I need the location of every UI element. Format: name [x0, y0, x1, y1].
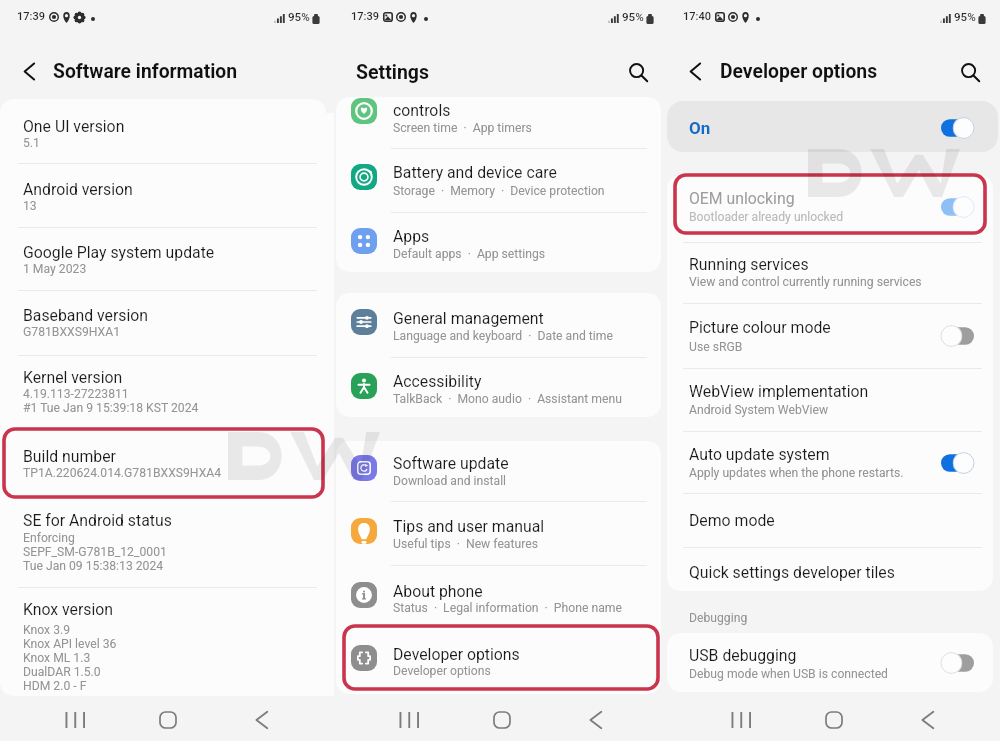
button[interactable]: Battery and device care [336, 148, 661, 212]
button[interactable]: WebView implementation [667, 368, 993, 431]
staticText: Knox ML 1.3 [23, 651, 91, 665]
staticText: Developer options [393, 645, 520, 664]
button[interactable]: Switch on [940, 195, 975, 219]
button[interactable]: Navigate up [13, 55, 45, 87]
staticText: View and control currently running servi… [689, 275, 922, 289]
button[interactable]: Switch on [940, 116, 975, 140]
staticText: General management [393, 309, 544, 328]
staticText: Quick settings developer tiles [689, 563, 895, 582]
staticText: Language and keyboard · Date and time [393, 329, 613, 343]
staticText: Android System WebView [689, 403, 829, 417]
button[interactable]: Accessibility [336, 357, 661, 417]
button[interactable]: Baseband version, G781BXXS9HXA1 [0, 290, 334, 355]
staticText: Enforcing [23, 531, 75, 545]
staticText: 4.19.113-27223811 [23, 387, 129, 401]
staticText: Debug mode when USB is connected [689, 667, 888, 681]
button[interactable]: Software update [336, 441, 661, 501]
button[interactable]: Google Play system update, 1 May 2023 [0, 227, 334, 290]
staticText: Auto update system [689, 445, 830, 464]
staticText: Developer options [720, 60, 878, 83]
staticText: TP1A.220624.014.G781BXXS9HXA4 [23, 466, 222, 480]
button[interactable]: Home [152, 704, 184, 736]
button[interactable]: About phone [336, 565, 661, 624]
staticText: Storage · Memory · Device protection [393, 184, 605, 198]
button[interactable]: Demo mode [667, 493, 993, 547]
staticText: controls [393, 101, 451, 120]
staticText: 13 [23, 199, 37, 213]
button[interactable]: Build number, TP1A.220624.014.G781BXXS9H… [0, 427, 334, 499]
staticText: Use sRGB [689, 340, 743, 354]
button[interactable]: Developer options [336, 624, 661, 694]
staticText: G781BXXS9HXA1 [23, 325, 121, 339]
staticText: Battery and device care [393, 163, 557, 182]
staticText: Software update [393, 454, 509, 473]
staticText: Knox 3.9 [23, 623, 71, 637]
button[interactable]: Recent apps [58, 704, 92, 736]
staticText: Screen time · App timers [393, 121, 532, 135]
button[interactable]: Android version, 13 [0, 163, 334, 227]
button[interactable]: Recent apps [724, 704, 758, 736]
button[interactable]: Back [580, 704, 612, 736]
staticText: TalkBack · Mono audio · Assistant menu [393, 392, 622, 406]
button[interactable]: Apps [336, 212, 661, 272]
staticText: Knox version [23, 600, 114, 619]
staticText: Status · Legal information · Phone name [393, 601, 622, 615]
button[interactable]: Digital wellbeing and parental controls [336, 97, 661, 148]
button[interactable]: Home [818, 704, 850, 736]
button[interactable]: Switch on [940, 451, 975, 475]
staticText: SE for Android status [23, 511, 172, 530]
button[interactable]: Quick settings developer tiles [667, 547, 993, 591]
staticText: Demo mode [689, 511, 775, 530]
staticText: 17:40 [683, 10, 711, 23]
staticText: #1 Tue Jan 9 15:39:18 KST 2024 [23, 401, 199, 415]
staticText: 1 May 2023 [23, 262, 87, 276]
button[interactable]: Home [486, 704, 518, 736]
staticText: 17:39 [351, 10, 379, 23]
staticText: One UI version [23, 117, 125, 136]
button[interactable]: Back [246, 704, 278, 736]
staticText: Apply updates when the phone restarts. [689, 466, 904, 480]
button[interactable]: Back [912, 704, 944, 736]
staticText: Google Play system update [23, 243, 215, 262]
staticText: About phone [393, 582, 483, 601]
staticText: OEM unlocking [689, 189, 795, 208]
button[interactable]: General management [336, 293, 661, 357]
staticText: Picture colour mode [689, 318, 831, 337]
staticText: Knox API level 36 [23, 637, 117, 651]
button[interactable]: Knox version [0, 587, 334, 696]
staticText: 17:39 [17, 10, 45, 23]
staticText: 95% [954, 10, 976, 24]
button[interactable]: Search [622, 56, 654, 88]
staticText: 95% [288, 10, 310, 24]
button[interactable]: Navigate up [679, 55, 711, 87]
staticText: Tue Jan 09 15:38:13 2024 [23, 559, 164, 573]
button[interactable]: Auto update system [667, 431, 993, 493]
staticText: Developer options [393, 664, 491, 678]
button[interactable]: Kernel version [0, 355, 334, 427]
button[interactable]: Switch off [940, 651, 975, 675]
button[interactable]: Tips and user manual [336, 501, 661, 565]
button[interactable]: Developer options on [667, 101, 998, 152]
staticText: Running services [689, 255, 809, 274]
staticText: 95% [622, 10, 644, 24]
button[interactable]: One UI version, 5.1 [0, 99, 334, 163]
staticText: Default apps · App settings [393, 247, 546, 261]
button[interactable]: USB debugging, Debug mode when USB is co… [667, 633, 993, 692]
staticText: Build number [23, 447, 116, 466]
button[interactable]: Picture colour mode, Use sRGB [667, 303, 993, 368]
staticText: USB debugging [689, 646, 797, 665]
staticText: Debugging [689, 611, 748, 625]
staticText: DualDAR 1.5.0 [23, 665, 101, 679]
button[interactable]: Running services [667, 242, 993, 303]
button[interactable]: Switch off [940, 324, 975, 348]
staticText: Apps [393, 227, 430, 246]
button[interactable]: SE for Android status, Enforcing [0, 499, 334, 587]
button[interactable]: OEM unlocking, Bootloader already unlock… [667, 175, 993, 242]
button[interactable]: Recent apps [392, 704, 426, 736]
staticText: Software information [53, 60, 237, 83]
staticText: HDM 2.0 - F [23, 679, 87, 693]
staticText: Settings [356, 61, 429, 84]
staticText: Download and install [393, 474, 507, 488]
staticText: Baseband version [23, 306, 148, 325]
button[interactable]: Search [954, 56, 986, 88]
